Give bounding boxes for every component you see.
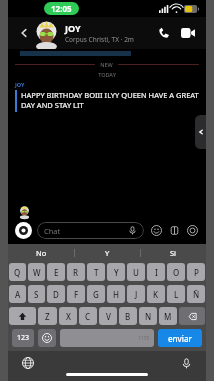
button[interactable]: H	[107, 285, 125, 303]
button[interactable]: R	[67, 263, 85, 281]
staticText: Z	[45, 311, 50, 322]
staticText: D	[53, 289, 59, 300]
button[interactable]: V	[99, 307, 117, 325]
button[interactable]: X	[59, 307, 77, 325]
staticText: JOY	[15, 81, 25, 88]
staticText: 1155	[138, 335, 150, 342]
button[interactable]: M	[159, 307, 177, 325]
button[interactable]: G	[87, 285, 105, 303]
button[interactable]: L	[167, 285, 185, 303]
staticText: TODAY	[98, 71, 116, 78]
button[interactable]: No	[8, 244, 74, 261]
button[interactable]: Change language	[20, 355, 36, 371]
button[interactable]: Key	[179, 307, 205, 325]
staticText: N	[145, 311, 152, 322]
button[interactable]: Chat	[37, 222, 144, 239]
staticText: Si	[170, 248, 177, 258]
staticText: I	[155, 267, 158, 278]
staticText: 123	[17, 333, 30, 343]
button[interactable]: P	[187, 263, 205, 281]
staticText: enviar	[168, 333, 192, 344]
staticText: V	[106, 311, 111, 322]
staticText: E	[54, 267, 59, 278]
staticText: Y	[105, 248, 110, 258]
button[interactable]: C	[79, 307, 97, 325]
button[interactable]: Key	[9, 307, 36, 325]
button[interactable]: J	[127, 285, 145, 303]
staticText: F	[74, 289, 79, 300]
button[interactable]: A	[9, 285, 26, 303]
button[interactable]: Stickers	[167, 223, 181, 237]
button[interactable]: Camera	[15, 222, 32, 239]
button[interactable]: T	[87, 263, 105, 281]
button[interactable]: 123	[12, 329, 34, 347]
staticText: K	[153, 289, 159, 300]
staticText: B	[125, 311, 131, 322]
button[interactable]: D	[47, 285, 65, 303]
button[interactable]: enviar	[158, 329, 202, 347]
button[interactable]: F	[67, 285, 85, 303]
staticText: Chat	[44, 226, 128, 236]
button[interactable]: Y	[75, 244, 140, 261]
staticText: H	[113, 289, 119, 300]
button[interactable]: Call	[152, 21, 176, 45]
button[interactable]: W	[28, 263, 45, 281]
staticText: Corpus Christi, TX · 2m	[65, 35, 134, 44]
staticText: L	[174, 289, 179, 300]
staticText: O	[173, 267, 180, 278]
staticText: C	[85, 311, 91, 322]
button[interactable]: Y	[107, 263, 125, 281]
staticText: W	[33, 267, 41, 278]
button[interactable]: Q	[9, 263, 26, 281]
staticText: A	[15, 289, 21, 300]
staticText: Q	[14, 267, 21, 278]
staticText: NEW	[100, 61, 113, 68]
button[interactable]: N	[139, 307, 157, 325]
button[interactable]: Si	[141, 244, 206, 261]
staticText: Y	[114, 267, 119, 278]
button[interactable]: B	[119, 307, 137, 325]
button[interactable]: Video call	[176, 21, 200, 45]
button[interactable]: Voice input	[178, 355, 194, 371]
staticText: U	[133, 267, 139, 278]
button[interactable]: E	[47, 263, 65, 281]
staticText: R	[73, 267, 79, 278]
staticText: M	[164, 311, 172, 322]
staticText: JOY	[65, 22, 81, 34]
staticText: HAPPY BIRTHDAY BOIII ILYY QUEEN HAVE A G…	[21, 90, 199, 110]
button[interactable]: Z	[38, 307, 57, 325]
button[interactable]: U	[127, 263, 145, 281]
button[interactable]: Ñ	[187, 285, 205, 303]
button[interactable]: Emoji keyboard	[38, 329, 56, 347]
staticText: G	[93, 289, 99, 300]
button[interactable]: Open panel	[195, 115, 206, 149]
staticText: T	[94, 267, 99, 278]
staticText: 12:05	[51, 3, 72, 14]
staticText: X	[66, 311, 71, 322]
button[interactable]: Location	[185, 223, 199, 237]
staticText: S	[34, 289, 39, 300]
button[interactable]: Emoji	[149, 223, 163, 237]
staticText: No	[36, 248, 47, 258]
staticText: J	[135, 289, 138, 300]
button[interactable]: I	[147, 263, 165, 281]
button[interactable]: S	[28, 285, 45, 303]
button[interactable]: HAPPY BIRTHDAY BOIII ILYY QUEEN HAVE A G…	[15, 90, 199, 112]
staticText: Ñ	[193, 289, 200, 300]
staticText: P	[194, 267, 199, 278]
button[interactable]: Back	[14, 23, 34, 43]
button[interactable]: O	[167, 263, 185, 281]
button[interactable]: K	[147, 285, 165, 303]
button[interactable]: 1155	[60, 329, 154, 347]
